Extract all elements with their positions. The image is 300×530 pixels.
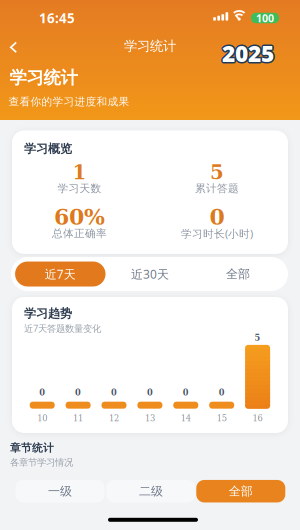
staticText: 16:45: [39, 9, 75, 27]
staticText: 0: [147, 388, 153, 397]
staticText: 学习天数: [57, 182, 101, 195]
staticText: 0: [111, 388, 117, 397]
staticText: 0: [75, 388, 81, 397]
staticText: 章节统计: [10, 441, 54, 454]
staticText: 近7天: [45, 266, 76, 282]
staticText: 0: [39, 388, 45, 397]
staticText: 100: [256, 11, 274, 25]
staticText: 5: [255, 333, 261, 343]
button[interactable]: 返回: [4, 36, 24, 58]
staticText: 近7天答题数量变化: [24, 322, 101, 334]
staticText: 学习时长(小时): [181, 226, 253, 241]
staticText: 2025: [222, 38, 274, 68]
staticText: 0: [183, 388, 189, 397]
staticText: 全部: [226, 267, 250, 281]
staticText: 总体正确率: [52, 227, 107, 240]
button[interactable]: 二级: [106, 480, 195, 502]
staticText: 0: [209, 204, 224, 230]
staticText: 一级: [48, 484, 72, 498]
button[interactable]: 一级: [15, 480, 104, 502]
staticText: 累计答题: [195, 182, 239, 195]
staticText: 学习趋势: [24, 306, 72, 321]
staticText: 60%: [54, 204, 105, 230]
staticText: 1: [72, 161, 86, 184]
button[interactable]: 全部: [192, 257, 284, 291]
staticText: 2025: [223, 38, 275, 68]
staticText: 2025: [222, 39, 274, 70]
staticText: 10: [37, 414, 47, 423]
staticText: 2025: [223, 37, 275, 67]
staticText: 二级: [139, 484, 163, 498]
staticText: 学习统计: [124, 38, 176, 54]
staticText: 2025: [222, 37, 274, 67]
staticText: 学习概览: [24, 141, 72, 156]
staticText: 2025: [221, 38, 273, 68]
staticText: 16: [253, 414, 263, 423]
staticText: 2025: [221, 37, 273, 67]
staticText: 0: [219, 388, 225, 397]
staticText: 12: [109, 414, 119, 423]
staticText: 15: [217, 414, 227, 423]
staticText: 2025: [221, 39, 273, 69]
staticText: 2025: [223, 39, 275, 69]
staticText: 14: [181, 414, 191, 423]
staticText: 查看你的学习进度和成果: [8, 95, 129, 108]
staticText: 5: [210, 161, 224, 184]
staticText: 全部: [229, 484, 253, 498]
button[interactable]: 全部: [196, 480, 285, 502]
button[interactable]: 近30天: [104, 257, 196, 291]
staticText: 11: [73, 414, 83, 423]
staticText: 13: [145, 414, 155, 423]
staticText: 学习统计: [10, 67, 78, 88]
staticText: 各章节学习情况: [10, 457, 73, 468]
staticText: 近30天: [131, 266, 169, 282]
button[interactable]: 近7天: [15, 261, 105, 286]
